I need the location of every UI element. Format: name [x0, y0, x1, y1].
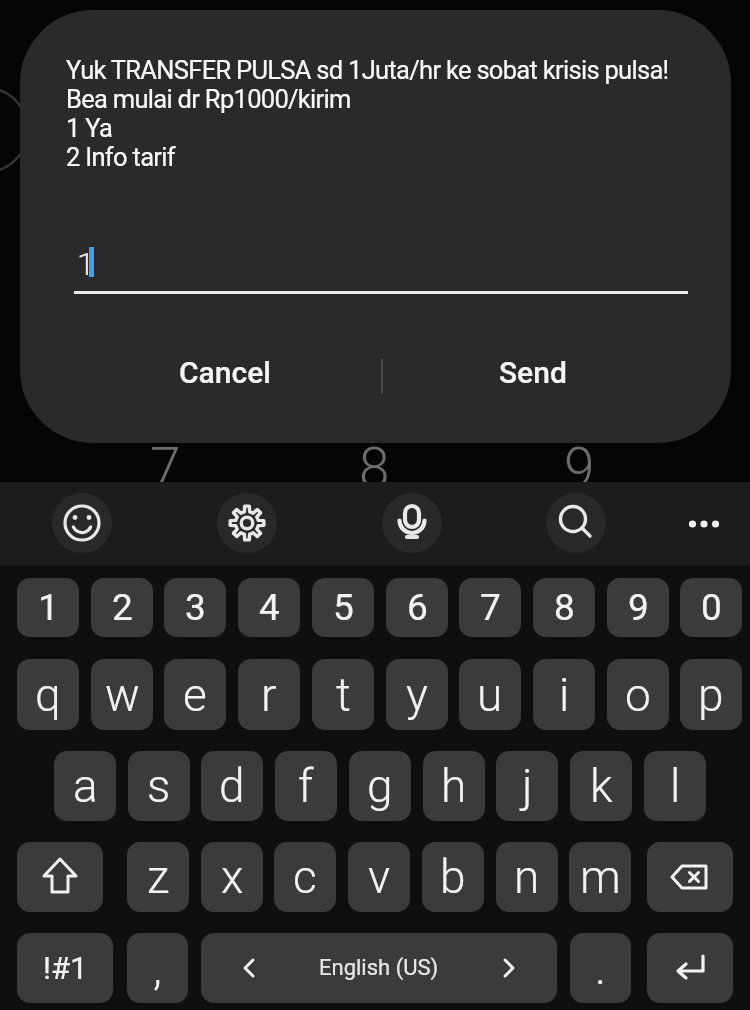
staticText: 4 [259, 586, 280, 629]
staticText: 8 [554, 586, 575, 629]
staticText: 9 [628, 586, 649, 629]
staticText: q [35, 668, 61, 722]
staticText: m [580, 850, 621, 904]
button[interactable] [17, 842, 103, 912]
staticText: 9 [564, 436, 595, 500]
staticText: 7 [150, 436, 181, 500]
staticText: u [477, 668, 503, 722]
staticText: 7 [480, 586, 501, 629]
staticText: c [293, 850, 317, 904]
button[interactable]: n [496, 842, 558, 912]
button[interactable]: s [128, 751, 190, 821]
staticText: h [441, 759, 467, 813]
button[interactable] [52, 493, 112, 553]
staticText: 0 [701, 586, 722, 629]
staticText: t [336, 668, 351, 722]
button[interactable]: b [422, 842, 484, 912]
staticText: Yuk TRANSFER PULSA sd 1Juta/hr ke sobat … [66, 55, 669, 173]
button[interactable]: 1 [17, 578, 79, 637]
button[interactable]: c [274, 842, 336, 912]
button[interactable]: 5 [312, 578, 374, 637]
staticText: s [147, 759, 171, 813]
button[interactable] [382, 493, 442, 553]
staticText: . [595, 941, 606, 995]
staticText: p [698, 668, 724, 722]
button[interactable] [674, 493, 734, 553]
button[interactable]: !#1 [17, 933, 113, 1003]
staticText: 1 [77, 245, 95, 283]
button[interactable]: l [644, 751, 706, 821]
button[interactable]: i [533, 659, 595, 730]
staticText: b [440, 850, 466, 904]
button[interactable]: 0 [680, 578, 742, 637]
button[interactable]: 9 [607, 578, 669, 637]
staticText: , [153, 941, 162, 995]
button[interactable]: a [54, 751, 116, 821]
button[interactable]: d [201, 751, 263, 821]
staticText: x [221, 850, 244, 904]
staticText: 6 [407, 586, 428, 629]
button[interactable]: p [680, 659, 742, 730]
staticText: v [368, 850, 391, 904]
button[interactable]: 7 [459, 578, 521, 637]
button[interactable] [647, 842, 733, 912]
staticText: n [514, 850, 540, 904]
button[interactable]: f [275, 751, 337, 821]
staticText: a [73, 759, 98, 813]
staticText: y [406, 668, 428, 722]
staticText: k [590, 759, 613, 813]
button[interactable]: r [238, 659, 300, 730]
button[interactable]: z [127, 842, 189, 912]
button[interactable]: m [569, 842, 631, 912]
button[interactable]: English (US) [201, 933, 557, 1003]
staticText: w [105, 668, 140, 722]
button[interactable]: 8 [533, 578, 595, 637]
button[interactable]: v [348, 842, 410, 912]
staticText: o [625, 668, 651, 722]
button[interactable] [217, 493, 277, 553]
button[interactable]: y [386, 659, 448, 730]
staticText: l [670, 759, 681, 813]
staticText: 2 [112, 586, 133, 629]
button[interactable]: g [349, 751, 411, 821]
staticText: e [183, 668, 207, 722]
button[interactable]: , [127, 933, 188, 1003]
staticText: 5 [333, 586, 354, 629]
staticText: z [147, 850, 170, 904]
staticText: j [522, 759, 533, 813]
button[interactable]: k [570, 751, 632, 821]
button[interactable]: u [459, 659, 521, 730]
button[interactable]: e [164, 659, 226, 730]
button[interactable]: 2 [91, 578, 153, 637]
button[interactable] [647, 933, 733, 1003]
button[interactable]: 4 [238, 578, 300, 637]
button[interactable]: h [423, 751, 485, 821]
button[interactable]: o [607, 659, 669, 730]
staticText: i [559, 668, 570, 722]
button[interactable]: x [201, 842, 263, 912]
staticText: !#1 [43, 950, 88, 986]
button[interactable]: Cancel [125, 342, 325, 402]
button[interactable]: t [312, 659, 374, 730]
staticText: d [219, 759, 245, 813]
button[interactable] [546, 493, 606, 553]
staticText: 3 [185, 586, 206, 629]
button[interactable]: w [91, 659, 153, 730]
button[interactable]: 6 [386, 578, 448, 637]
button[interactable]: . [570, 933, 631, 1003]
staticText: r [261, 668, 277, 722]
staticText: English (US) [319, 955, 439, 981]
staticText: f [298, 759, 314, 813]
staticText: Cancel [179, 355, 272, 390]
staticText: 1 [38, 586, 59, 629]
staticText: Send [499, 355, 567, 390]
button[interactable]: j [496, 751, 558, 821]
button[interactable]: Send [433, 342, 633, 402]
staticText: 8 [359, 436, 390, 500]
button[interactable]: q [17, 659, 79, 730]
button[interactable]: 3 [164, 578, 226, 637]
staticText: g [367, 759, 393, 813]
